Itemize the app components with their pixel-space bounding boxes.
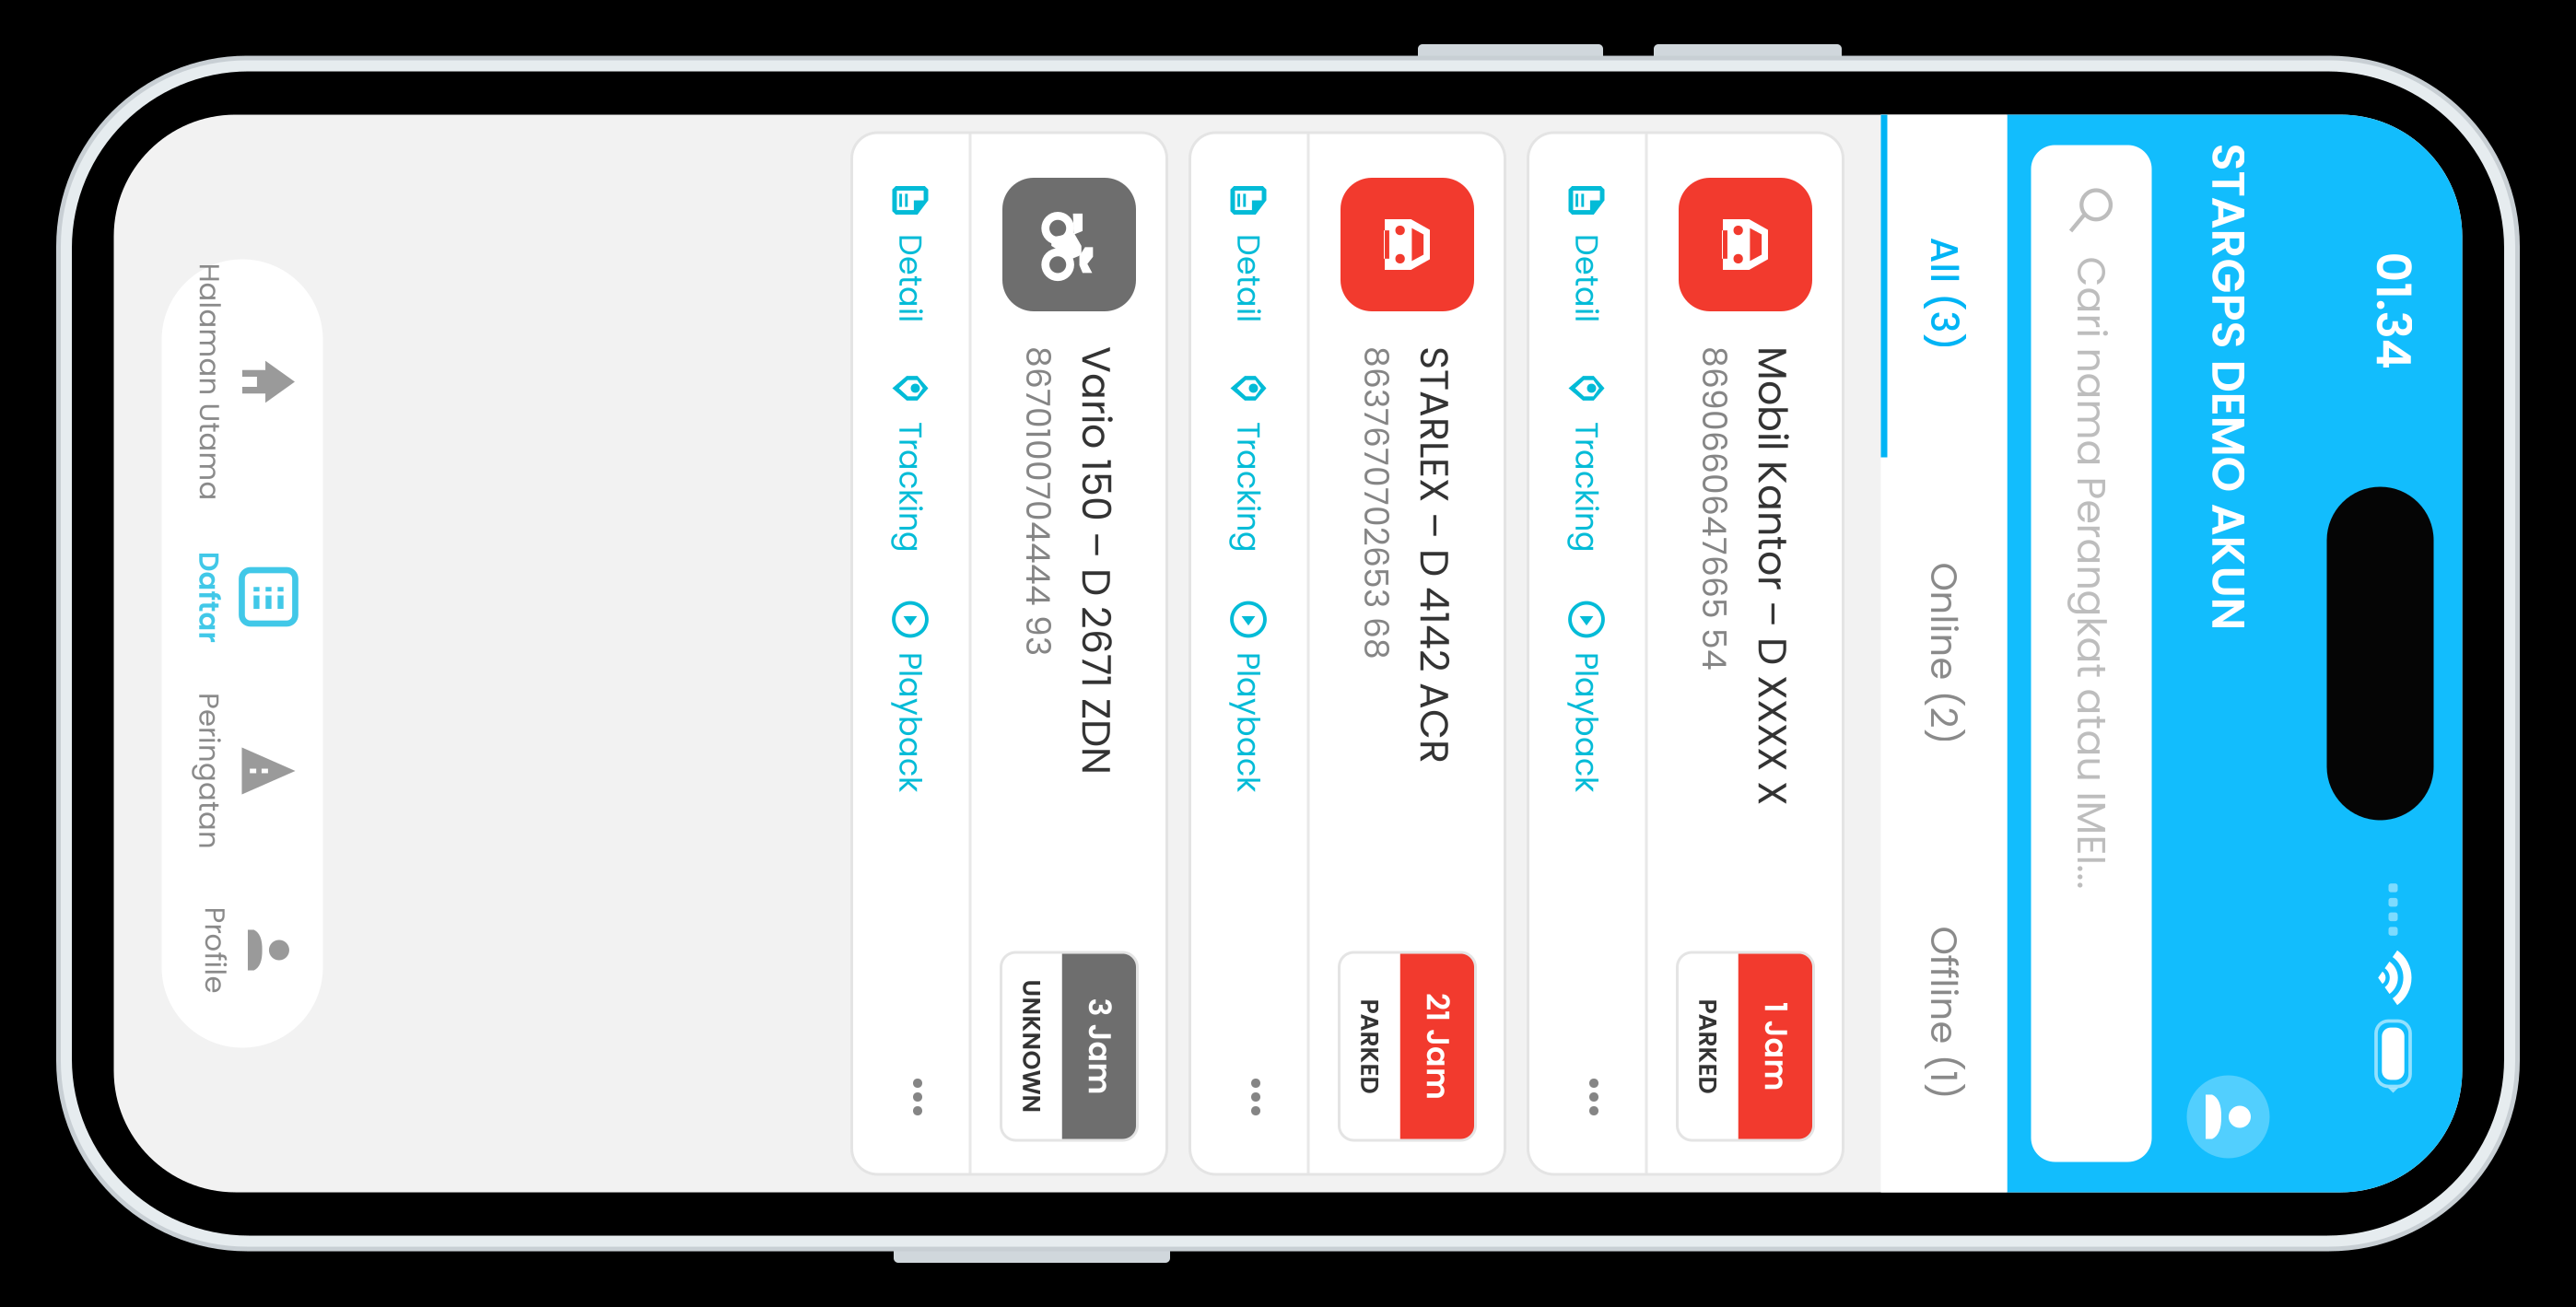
button[interactable]: More options	[1693, 635, 1770, 752]
staticText: 1 Jam	[1636, 144, 1726, 187]
button[interactable]: Detail	[820, 635, 957, 752]
staticText: PARKED	[1633, 555, 1728, 589]
staticText: Detail	[868, 672, 957, 715]
button[interactable]: Offline (1)	[1468, 0, 1827, 61]
button[interactable]: Tracking	[1009, 973, 1187, 1090]
staticText: Mobil Kantor – D XXXX X	[981, 142, 1440, 197]
button[interactable]: Detail	[820, 297, 957, 414]
staticText: STARLEX – D 4142 ACR	[981, 480, 1398, 535]
staticText: 3 Jam	[1633, 820, 1729, 863]
staticText: Tracking	[1056, 1010, 1187, 1053]
staticText: 8637670702653 68	[981, 542, 1294, 589]
button[interactable]: Online (2)	[1108, 0, 1468, 61]
button[interactable]: Tracking	[1009, 635, 1187, 752]
staticText: Playback	[1287, 334, 1427, 377]
staticText: Vario 150 – D 2671 ZDN	[981, 818, 1409, 873]
staticText: Detail	[868, 334, 957, 377]
staticText: 8670100704444 93	[981, 880, 1290, 927]
staticText: Tracking	[1056, 672, 1187, 715]
staticText: 8690660647665 54	[981, 204, 1305, 251]
button[interactable]: All (3)	[749, 0, 1108, 61]
staticText: Playback	[1287, 672, 1427, 715]
button[interactable]: Playback	[1236, 297, 1427, 414]
button[interactable]: Detail	[820, 973, 957, 1090]
button[interactable]: Playback	[1236, 635, 1427, 752]
button[interactable]: More options	[1693, 297, 1770, 414]
button[interactable]: More options	[1693, 973, 1770, 1090]
staticText: 21 Jam	[1628, 482, 1734, 525]
button[interactable]: Tracking	[1009, 297, 1187, 414]
button[interactable]: Playback	[1236, 973, 1427, 1090]
staticText: Tracking	[1056, 334, 1187, 377]
staticText: Playback	[1287, 1010, 1427, 1053]
staticText: PARKED	[1633, 217, 1728, 251]
